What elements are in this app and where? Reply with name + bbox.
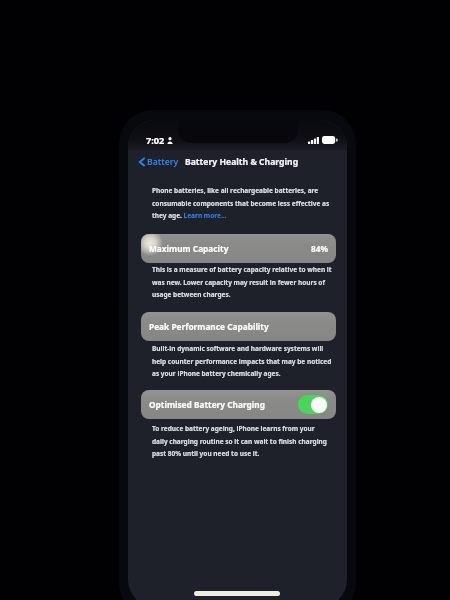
staticText: Peak Performance Capability — [149, 321, 269, 332]
staticText: Battery Health & Charging — [185, 156, 299, 168]
staticText: Battery — [147, 156, 179, 168]
staticText: To reduce battery ageing, iPhone learns … — [152, 424, 330, 457]
button[interactable]: Optimised Battery Charging — [141, 390, 336, 419]
staticText: Built-in dynamic software and hardware s… — [152, 344, 332, 377]
staticText: Maximum Capacity — [149, 243, 229, 254]
staticText: Optimised Battery Charging — [149, 399, 265, 410]
staticText: 7:02 — [146, 134, 165, 147]
button[interactable]: Optimised Battery Charging toggle, on — [298, 395, 328, 414]
button[interactable]: Peak Performance Capability — [141, 312, 336, 341]
staticText: This is a measure of battery capacity re… — [152, 265, 332, 298]
button[interactable]: Battery — [138, 153, 180, 171]
staticText: Phone batteries, like all rechargeable b… — [152, 186, 331, 219]
button[interactable]: Maximum Capacity — [141, 234, 336, 263]
staticText: 84% — [311, 243, 328, 254]
